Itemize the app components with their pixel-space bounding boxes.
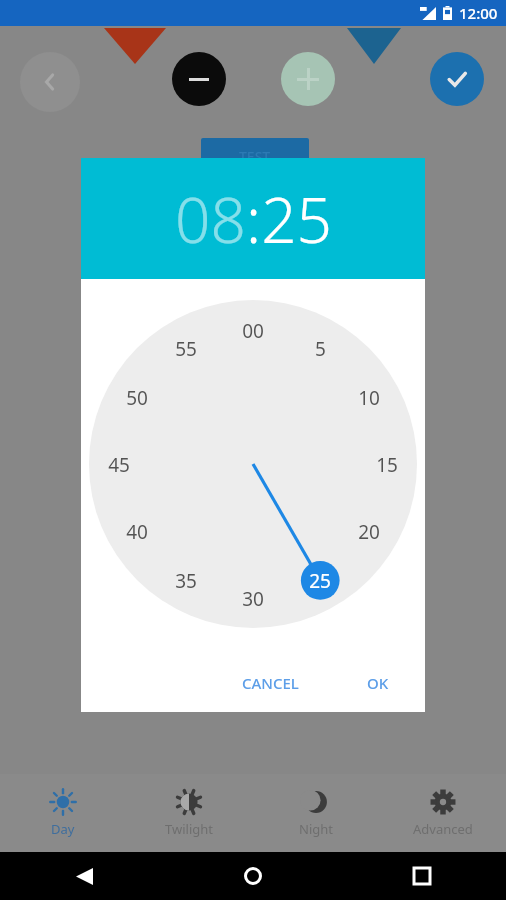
staticText: 40 — [126, 519, 148, 543]
button[interactable]: 08 — [81, 158, 425, 279]
button[interactable]: Decrease — [172, 52, 226, 106]
staticText: Day — [51, 820, 75, 838]
button[interactable]: Day — [0, 774, 126, 852]
button[interactable]: Night — [252, 774, 379, 852]
staticText: 55 — [175, 336, 197, 360]
staticText: 00 — [242, 318, 264, 342]
staticText: CANCEL — [242, 673, 299, 693]
staticText: 25 — [309, 568, 331, 592]
button[interactable]: CANCEL — [230, 665, 311, 701]
button[interactable]: Twilight — [126, 774, 252, 852]
button[interactable]: Confirm — [430, 52, 484, 106]
staticText: 50 — [126, 385, 148, 409]
staticText: OK — [367, 673, 389, 693]
staticText: 35 — [175, 568, 197, 592]
button[interactable]: Back — [20, 52, 80, 112]
staticText: TEST — [239, 147, 271, 166]
button[interactable]: Recents — [402, 856, 442, 896]
button[interactable]: Increase — [281, 52, 335, 106]
staticText: :25 — [246, 177, 332, 261]
staticText: 20 — [358, 519, 380, 543]
staticText: 45 — [108, 452, 130, 476]
staticText: 10 — [358, 385, 380, 409]
staticText: Night — [299, 820, 333, 838]
button[interactable]: Home — [233, 856, 273, 896]
staticText: 08 — [175, 177, 246, 261]
staticText: 12:00 — [459, 3, 498, 23]
button[interactable]: Back — [64, 856, 104, 896]
staticText: 30 — [242, 586, 264, 610]
button[interactable]: TEST — [201, 138, 309, 174]
staticText: 15 — [376, 452, 398, 476]
button[interactable]: 00 — [89, 300, 417, 628]
button[interactable]: Advanced — [379, 774, 506, 852]
staticText: Twilight — [165, 820, 213, 838]
staticText: Advanced — [413, 820, 473, 838]
staticText: 5 — [315, 336, 326, 360]
button[interactable]: OK — [355, 665, 401, 701]
